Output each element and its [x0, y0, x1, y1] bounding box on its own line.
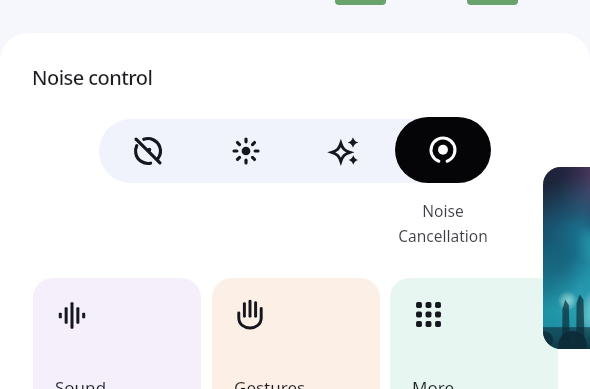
staticText: Noise Cancellation	[373, 200, 513, 246]
staticText: Gestures	[234, 376, 306, 389]
button[interactable]: Noise Cancellation	[395, 117, 491, 183]
staticText: Noise control	[32, 64, 153, 91]
staticText: Sound	[55, 376, 107, 389]
button[interactable]: Noise control off	[123, 126, 173, 176]
button[interactable]: More	[390, 278, 558, 389]
button[interactable]: Sound	[33, 278, 201, 389]
button[interactable]: Adaptive	[319, 126, 369, 176]
button[interactable]: Now playing artwork	[543, 167, 590, 349]
button[interactable]: Gestures	[212, 278, 380, 389]
staticText: More	[412, 376, 454, 389]
button[interactable]: Transparency	[221, 126, 271, 176]
